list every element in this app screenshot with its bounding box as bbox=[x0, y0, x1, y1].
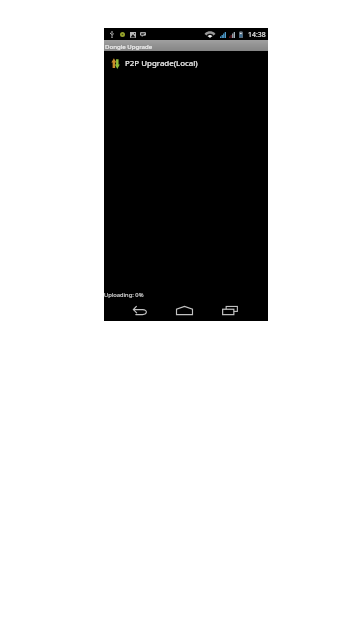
staticText: P2P Upgrade(Local) bbox=[125, 58, 198, 69]
button[interactable]: Dongle Upgrade bbox=[104, 40, 268, 51]
staticText: Dongle Upgrade bbox=[105, 42, 153, 50]
button[interactable]: Home bbox=[162, 300, 207, 321]
button[interactable]: P2P Upgrade(Local) bbox=[104, 55, 268, 71]
button[interactable]: Recent apps bbox=[207, 300, 252, 321]
staticText: 14:38 bbox=[248, 30, 266, 39]
staticText: Uploading: 0% bbox=[104, 291, 144, 299]
button[interactable]: Back bbox=[117, 300, 162, 321]
